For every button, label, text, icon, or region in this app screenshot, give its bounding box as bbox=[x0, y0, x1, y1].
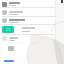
button[interactable]: List item five bbox=[0, 35, 55, 42]
button[interactable]: List item two bbox=[0, 9, 55, 16]
button[interactable]: Message composer bbox=[3, 44, 49, 56]
button[interactable]: Progress bbox=[4, 60, 14, 62]
button[interactable]: Selected action bbox=[0, 25, 55, 34]
button[interactable]: Contact entry bbox=[0, 1, 55, 7]
button[interactable]: Primary action bbox=[2, 26, 14, 33]
button[interactable]: List item three bbox=[0, 17, 55, 24]
